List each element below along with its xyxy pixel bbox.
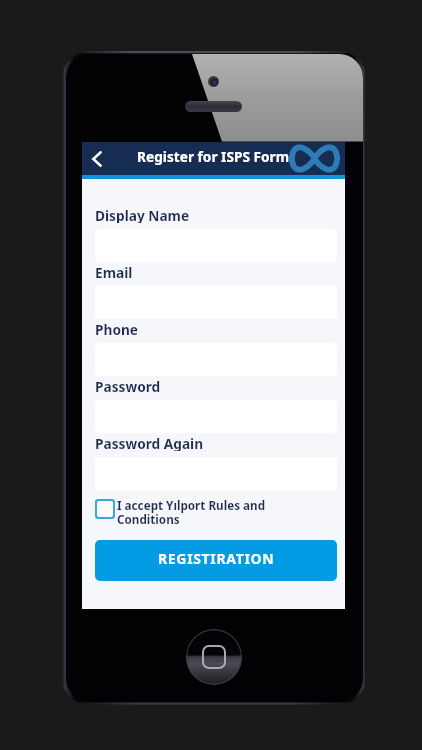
staticText: Phone: [95, 320, 139, 337]
button[interactable]: Home: [186, 629, 242, 685]
staticText: Display Name: [95, 206, 190, 223]
staticText: Password: [95, 377, 161, 394]
staticText: Password Again: [95, 434, 204, 451]
staticText: I accept Yilport Rules and Conditions: [117, 497, 269, 527]
staticText: REGISTIRATION: [158, 549, 275, 568]
staticText: Register for ISPS Form: [137, 147, 290, 166]
button[interactable]: I accept Yilport Rules and Conditions: [95, 497, 337, 527]
button[interactable]: Back: [84, 142, 110, 175]
button[interactable]: REGISTIRATION: [95, 540, 337, 581]
staticText: Email: [95, 263, 133, 280]
